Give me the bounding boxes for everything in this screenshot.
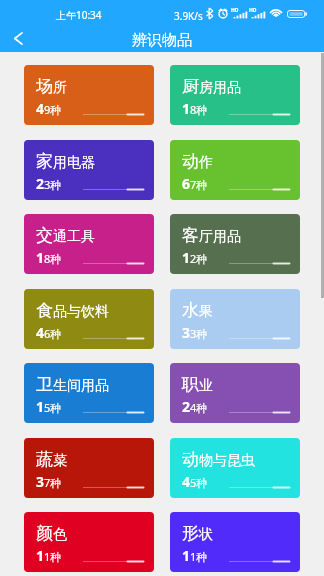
button[interactable]: Back xyxy=(2,28,33,52)
staticText: 食品与饮料 xyxy=(36,300,109,321)
staticText: 12种 xyxy=(182,248,208,267)
staticText: 蔬菜 xyxy=(36,449,67,470)
staticText: 24种 xyxy=(182,397,208,416)
button[interactable]: 动物与昆虫 xyxy=(170,438,300,498)
staticText: 18种 xyxy=(36,248,62,267)
button[interactable]: 食品与饮料 xyxy=(24,289,154,349)
staticText: 33种 xyxy=(182,323,208,342)
staticText: 交通工具 xyxy=(36,225,95,246)
staticText: 动物与昆虫 xyxy=(182,449,255,470)
button[interactable]: 职业 xyxy=(170,363,300,423)
button[interactable]: 客厅用品 xyxy=(170,214,300,274)
staticText: 23种 xyxy=(36,174,62,193)
button[interactable]: 动作 xyxy=(170,140,300,200)
staticText: 15种 xyxy=(36,397,62,416)
staticText: 45种 xyxy=(182,472,208,491)
button[interactable]: 蔬菜 xyxy=(24,438,154,498)
staticText: 卫生间用品 xyxy=(36,374,109,395)
staticText: 11种 xyxy=(36,546,62,565)
staticText: 厨房用品 xyxy=(182,76,241,97)
staticText: 家用电器 xyxy=(36,151,95,172)
button[interactable]: 形状 xyxy=(170,512,300,572)
button[interactable]: 水果 xyxy=(170,289,300,349)
staticText: 辨识物品 xyxy=(132,31,192,50)
button[interactable]: 厨房用品 xyxy=(170,65,300,125)
staticText: 职业 xyxy=(182,374,213,395)
button[interactable]: 颜色 xyxy=(24,512,154,572)
staticText: 49种 xyxy=(36,99,62,118)
staticText: 67种 xyxy=(182,174,208,193)
staticText: 上午10:34 xyxy=(56,8,102,22)
staticText: 46种 xyxy=(36,323,62,342)
button[interactable]: 家用电器 xyxy=(24,140,154,200)
staticText: HD xyxy=(231,7,239,14)
staticText: 客厅用品 xyxy=(182,225,241,246)
staticText: 18种 xyxy=(182,99,208,118)
staticText: 11种 xyxy=(182,546,208,565)
staticText: 动作 xyxy=(182,151,213,172)
staticText: 37种 xyxy=(36,472,62,491)
button[interactable]: 卫生间用品 xyxy=(24,363,154,423)
staticText: HD xyxy=(249,7,257,14)
button[interactable]: 场所 xyxy=(24,65,154,125)
staticText: 形状 xyxy=(182,523,213,544)
staticText: 3.9K/s xyxy=(174,9,203,23)
staticText: 颜色 xyxy=(36,523,67,544)
button[interactable]: 交通工具 xyxy=(24,214,154,274)
staticText: 场所 xyxy=(36,76,67,97)
staticText: 水果 xyxy=(182,300,213,321)
